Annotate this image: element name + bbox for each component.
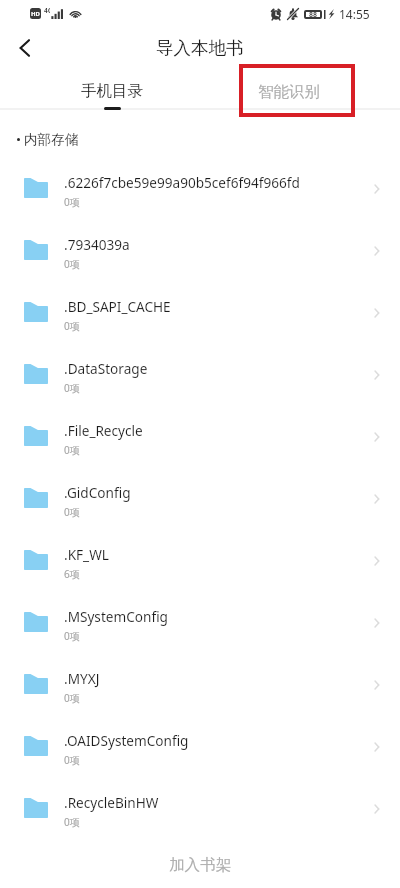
button[interactable]: 手机目录 (26, 62, 198, 110)
button[interactable]: .7934039a (0, 228, 400, 290)
staticText: 智能识别 (258, 82, 320, 102)
staticText: 导入本地书 (156, 37, 244, 59)
staticText: .KF_WL (64, 545, 109, 564)
staticText: .OAIDSystemConfig (64, 731, 189, 750)
button[interactable]: .DataStorage (0, 352, 400, 414)
staticText: .DataStorage (64, 359, 148, 378)
staticText: 6项 (64, 567, 80, 581)
staticText: 88 (309, 10, 318, 19)
button[interactable]: .MSystemConfig (0, 600, 400, 662)
staticText: 0项 (64, 691, 80, 705)
staticText: 4G (44, 6, 50, 15)
staticText: 0项 (64, 815, 80, 829)
staticText: 手机目录 (81, 81, 143, 101)
staticText: .7934039a (64, 235, 130, 254)
staticText: .RecycleBinHW (64, 793, 159, 812)
staticText: 0项 (64, 257, 80, 271)
button[interactable]: .GidConfig (0, 476, 400, 538)
staticText: .MSystemConfig (64, 607, 168, 626)
staticText: 0项 (64, 443, 80, 457)
staticText: HD (31, 10, 40, 18)
staticText: .MYXJ (64, 669, 100, 688)
button[interactable]: .BD_SAPI_CACHE (0, 290, 400, 352)
staticText: .File_Recycle (64, 421, 143, 440)
staticText: 内部存储 (24, 131, 79, 148)
staticText: 加入书架 (169, 855, 232, 875)
staticText: .GidConfig (64, 483, 131, 502)
button[interactable]: .RecycleBinHW (0, 786, 400, 848)
button[interactable]: .OAIDSystemConfig (0, 724, 400, 786)
button[interactable]: .6226f7cbe59e99a90b5cef6f94f966fd (0, 166, 400, 228)
staticText: 0项 (64, 753, 80, 767)
staticText: 0项 (64, 629, 80, 643)
staticText: 0项 (64, 505, 80, 519)
staticText: .6226f7cbe59e99a90b5cef6f94f966fd (64, 173, 300, 192)
button[interactable]: 加入书架 (0, 842, 400, 888)
button[interactable]: .KF_WL (0, 538, 400, 600)
staticText: 0项 (64, 195, 80, 209)
staticText: 14:55 (339, 6, 370, 22)
button[interactable]: 智能识别 (203, 62, 375, 110)
button[interactable]: .File_Recycle (0, 414, 400, 476)
staticText: 0项 (64, 381, 80, 395)
staticText: 0项 (64, 319, 80, 333)
staticText: .BD_SAPI_CACHE (64, 297, 171, 316)
button[interactable]: .MYXJ (0, 662, 400, 724)
button[interactable]: Back (8, 31, 42, 65)
